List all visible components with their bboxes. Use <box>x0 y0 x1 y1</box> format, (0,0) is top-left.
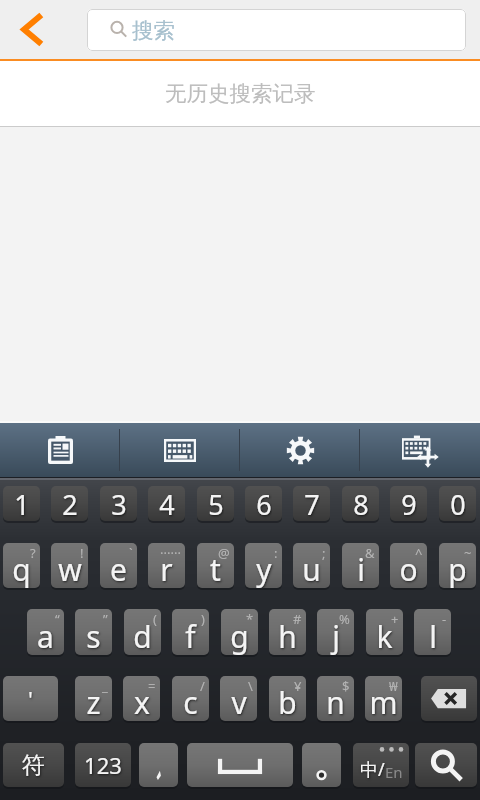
button[interactable]: j <box>317 609 354 655</box>
button[interactable]: Settings <box>240 423 360 477</box>
button[interactable]: n <box>317 676 354 721</box>
staticText: g <box>230 616 249 655</box>
button[interactable]: 123 <box>75 743 131 787</box>
button[interactable]: s <box>75 609 112 655</box>
staticText: ' <box>28 684 33 714</box>
button[interactable]: e <box>100 543 137 588</box>
staticText: 0 <box>450 486 466 521</box>
button[interactable]: b <box>269 676 306 721</box>
staticText: 无历史搜索记录 <box>165 80 316 107</box>
button[interactable]: 3 <box>100 486 137 521</box>
button[interactable]: g <box>221 609 258 655</box>
staticText: p <box>448 549 467 588</box>
button[interactable]: Shift <box>3 676 58 721</box>
staticText: “ <box>55 610 60 628</box>
staticText: ; <box>322 544 326 562</box>
button[interactable]: 2 <box>51 486 88 521</box>
button[interactable]: f <box>172 609 209 655</box>
staticText: 123 <box>84 750 122 780</box>
button[interactable]: Back <box>0 0 70 59</box>
button[interactable]: 9 <box>390 486 427 521</box>
button[interactable]: Move keyboard <box>360 423 480 477</box>
button[interactable]: l <box>414 609 451 655</box>
staticText: ) <box>201 610 205 628</box>
staticText: - <box>442 610 447 628</box>
staticText: ” <box>103 610 108 628</box>
button[interactable]: 5 <box>197 486 234 521</box>
button[interactable]: r <box>148 543 185 588</box>
button[interactable]: m <box>365 676 402 721</box>
button[interactable]: p <box>439 543 476 588</box>
button[interactable]: 8 <box>342 486 379 521</box>
staticText: o <box>399 549 418 588</box>
button[interactable]: a <box>27 609 64 655</box>
button[interactable]: Comma <box>139 743 178 787</box>
staticText: b <box>278 682 297 721</box>
button[interactable]: Space <box>187 743 293 787</box>
staticText: u <box>302 549 321 588</box>
staticText: h <box>278 616 297 655</box>
button[interactable]: z <box>75 676 112 721</box>
button[interactable]: 无历史搜索记录 <box>0 61 480 126</box>
staticText: j <box>332 616 340 655</box>
button[interactable]: q <box>3 543 40 588</box>
staticText: ! <box>80 544 84 562</box>
staticText: e <box>110 549 127 588</box>
button[interactable]: 符 <box>3 743 64 787</box>
staticText: 6 <box>256 486 272 521</box>
staticText: ······ <box>160 544 181 562</box>
staticText: 1 <box>14 486 30 521</box>
button[interactable]: 4 <box>148 486 185 521</box>
button[interactable]: c <box>172 676 209 721</box>
staticText: n <box>326 682 345 721</box>
button[interactable]: 7 <box>293 486 330 521</box>
button[interactable]: h <box>269 609 306 655</box>
button[interactable]: 0 <box>439 486 476 521</box>
button[interactable]: Backspace <box>421 676 477 721</box>
staticText: m <box>369 682 398 721</box>
button[interactable]: v <box>220 676 257 721</box>
staticText: En <box>385 762 403 782</box>
staticText: s <box>86 616 101 655</box>
staticText: t <box>210 549 221 588</box>
button[interactable]: y <box>245 543 282 588</box>
button[interactable]: Period <box>302 743 341 787</box>
button[interactable]: Search <box>415 743 477 787</box>
button[interactable]: Keyboard layout <box>120 423 240 477</box>
staticText: y <box>256 549 272 588</box>
button[interactable]: k <box>366 609 403 655</box>
button[interactable]: Language <box>353 743 409 787</box>
button[interactable]: 搜索 <box>87 9 466 51</box>
staticText: 2 <box>62 486 78 521</box>
staticText: f <box>185 616 196 655</box>
button[interactable]: 6 <box>245 486 282 521</box>
staticText: 3 <box>111 486 127 521</box>
staticText: _ <box>102 677 108 695</box>
staticText: $ <box>342 677 350 695</box>
button[interactable]: i <box>342 543 379 588</box>
button[interactable]: d <box>124 609 161 655</box>
staticText: ¥ <box>294 677 302 695</box>
staticText: 9 <box>401 486 417 521</box>
staticText: * <box>246 610 254 628</box>
staticText: ₩ <box>389 677 398 695</box>
staticText: ( <box>153 610 157 628</box>
button[interactable]: Clipboard <box>0 423 120 477</box>
button[interactable]: x <box>123 676 160 721</box>
button[interactable]: 1 <box>3 486 40 521</box>
staticText: w <box>58 549 82 588</box>
button[interactable]: t <box>197 543 234 588</box>
staticText: i <box>357 549 365 588</box>
staticText: z <box>86 682 101 721</box>
button[interactable]: o <box>390 543 427 588</box>
staticText: l <box>429 616 437 655</box>
staticText: 搜索 <box>132 17 175 44</box>
button[interactable]: w <box>51 543 88 588</box>
staticText: 5 <box>208 486 224 521</box>
staticText: ` <box>129 544 133 562</box>
staticText: k <box>376 616 393 655</box>
staticText: 中/ <box>360 757 385 782</box>
staticText: d <box>133 616 152 655</box>
staticText: : <box>274 544 278 562</box>
button[interactable]: u <box>293 543 330 588</box>
